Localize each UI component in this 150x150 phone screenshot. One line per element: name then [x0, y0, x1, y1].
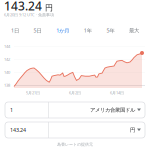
staticText: 140	[4, 69, 10, 75]
staticText: アメリカ合衆国ドル	[90, 107, 135, 113]
staticText: 6月20日 9:12 UTC · 免責事項	[4, 12, 54, 17]
button[interactable]: 最大	[127, 25, 141, 36]
button[interactable]: 1	[5, 102, 48, 118]
staticText: 5月21日	[26, 90, 40, 95]
button[interactable]: 5日	[32, 25, 44, 36]
button[interactable]: 1日	[9, 25, 21, 36]
staticText: 1日	[11, 27, 19, 34]
staticText: 為替レートの提供元	[57, 142, 93, 147]
staticText: 円	[130, 127, 135, 133]
staticText: 142	[4, 56, 10, 62]
staticText: 143.24	[4, 0, 42, 14]
staticText: 6月2日	[69, 90, 81, 95]
staticText: 最大	[129, 27, 139, 34]
staticText: 5日	[34, 27, 42, 34]
staticText: 143.24	[10, 126, 26, 134]
staticText: 138	[4, 82, 10, 88]
staticText: 144	[4, 43, 10, 49]
button[interactable]: 1か月	[54, 25, 71, 36]
staticText: 6月14日	[110, 90, 124, 95]
button[interactable]: 5年	[104, 25, 116, 36]
button[interactable]: アメリカ合衆国ドル	[49, 102, 145, 118]
staticText: 1	[10, 106, 13, 114]
staticText: 円	[45, 3, 53, 13]
button[interactable]: 為替レートの提供元	[0, 142, 150, 147]
button[interactable]: 143.24	[5, 122, 48, 138]
staticText: 5年	[106, 27, 114, 34]
button[interactable]: 円	[49, 122, 145, 138]
staticText: 1年	[84, 27, 92, 34]
staticText: 1か月	[56, 27, 69, 34]
button[interactable]: 1年	[82, 25, 94, 36]
